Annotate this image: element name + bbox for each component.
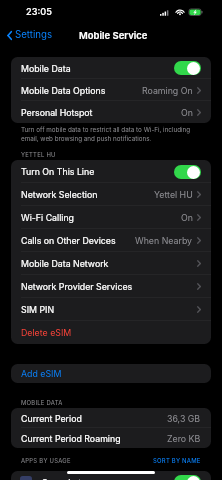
staticText: Network Provider Services <box>21 281 133 292</box>
staticText: 23:05 <box>26 6 52 17</box>
staticText: Calls on Other Devices <box>21 235 116 246</box>
staticText: Add eSIM <box>21 368 62 379</box>
staticText: On <box>181 107 193 118</box>
staticText: SORT BY NAME <box>153 457 201 464</box>
staticText: Settings <box>15 29 53 41</box>
staticText: Mobile Service <box>79 30 148 41</box>
button[interactable]: Current Period Roaming <box>11 428 211 448</box>
button[interactable]: Calls on Other Devices <box>11 229 211 252</box>
button[interactable]: Wi-Fi Calling <box>11 206 211 229</box>
staticText: APPS BY USAGE <box>21 457 71 464</box>
button[interactable]: Network Selection <box>11 183 211 206</box>
staticText: SIM PIN <box>21 304 55 315</box>
button[interactable]: Add eSIM <box>11 364 211 383</box>
staticText: Yettel HU <box>154 189 193 200</box>
staticText: Personal Hotspot <box>21 107 93 118</box>
button[interactable]: Mobile Data Network <box>11 252 211 275</box>
staticText: Mobile Data Options <box>21 85 106 96</box>
staticText: Turn off mobile data to restrict all dat… <box>21 126 191 142</box>
button[interactable]: Personal Hotspot <box>11 101 211 123</box>
button[interactable]: Back to Settings <box>0 29 59 41</box>
staticText: 36,3 GB <box>167 413 201 424</box>
staticText: On <box>181 212 193 223</box>
button[interactable]: Mobile Data <box>11 57 211 79</box>
button[interactable]: Turn On This Line <box>11 160 211 183</box>
button[interactable]: Mobile Data Options <box>11 79 211 101</box>
button[interactable]: Network Provider Services <box>11 275 211 298</box>
staticText: Snapchat <box>42 477 82 480</box>
button[interactable]: Toggle <box>174 165 201 179</box>
staticText: Turn On This Line <box>21 166 95 177</box>
staticText: Zero KB <box>167 433 201 444</box>
staticText: MOBILE DATA <box>21 399 63 406</box>
staticText: Current Period <box>21 413 82 424</box>
button[interactable]: SIM PIN <box>11 298 211 321</box>
button[interactable]: SORT BY NAME <box>153 457 201 464</box>
staticText: Mobile Data Network <box>21 258 109 269</box>
staticText: Wi-Fi Calling <box>21 212 74 223</box>
button[interactable]: Snapchat <box>11 471 211 480</box>
staticText: YETTEL HU <box>21 151 56 158</box>
staticText: Mobile Data <box>21 63 71 74</box>
button[interactable]: Toggle <box>174 61 201 75</box>
staticText: Network Selection <box>21 189 98 200</box>
staticText: Roaming On <box>142 85 193 96</box>
button[interactable]: Delete eSIM <box>11 321 211 344</box>
button[interactable]: Current Period <box>11 408 211 428</box>
staticText: Delete eSIM <box>21 327 72 338</box>
staticText: When Nearby <box>135 235 193 246</box>
staticText: Current Period Roaming <box>21 433 121 444</box>
button[interactable]: Toggle <box>174 475 201 480</box>
